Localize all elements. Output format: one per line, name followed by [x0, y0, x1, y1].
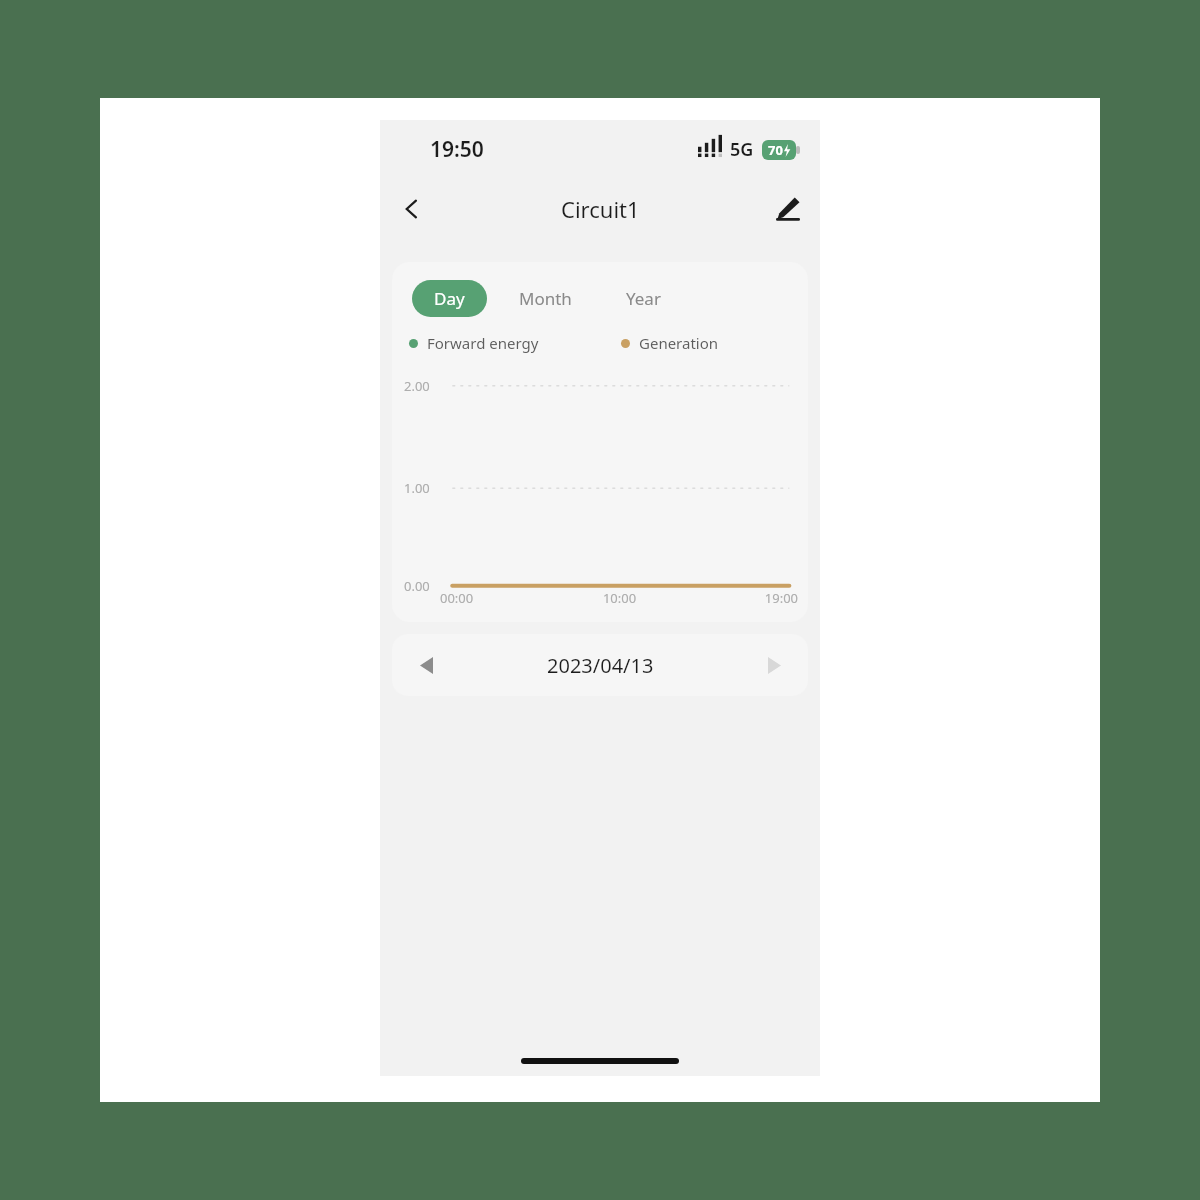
staticText: 00:00	[440, 589, 560, 607]
button[interactable]: Previous day	[404, 643, 448, 687]
staticText: 19:00	[679, 589, 798, 607]
staticText: Generation	[639, 333, 719, 353]
button[interactable]: Month	[497, 280, 594, 317]
staticText: 19:50	[430, 135, 484, 164]
staticText: 10:00	[560, 589, 679, 607]
staticText: 1.00	[404, 479, 430, 497]
staticText: Forward energy	[427, 333, 539, 353]
button[interactable]: Back	[388, 185, 436, 233]
staticText: 5G	[730, 137, 754, 162]
staticText: 2.00	[404, 377, 430, 395]
button[interactable]: Next day	[752, 643, 796, 687]
staticText: Circuit1	[561, 194, 640, 224]
staticText: 0.00	[404, 577, 430, 595]
staticText: Month	[519, 287, 572, 310]
staticText: 70	[768, 141, 783, 159]
staticText: 2023/04/13	[547, 652, 654, 679]
button[interactable]: Edit	[764, 185, 812, 233]
staticText: Year	[626, 287, 661, 310]
button[interactable]: Year	[604, 280, 683, 317]
button[interactable]: Day	[412, 280, 487, 317]
staticText: Day	[434, 287, 465, 310]
